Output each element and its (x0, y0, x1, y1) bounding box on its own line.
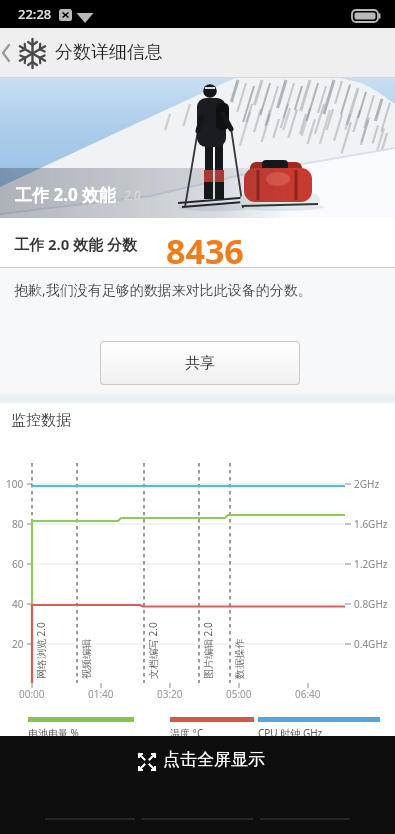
staticText: 分数详细信息 (55, 41, 163, 64)
staticText: 8436 (166, 228, 244, 274)
button[interactable]: 共享 (101, 342, 299, 384)
staticText: 工作 2.0 效能 分数 (14, 234, 138, 254)
staticText: 22:28 (18, 5, 52, 23)
staticText: 2.0 (124, 187, 141, 203)
button[interactable] (0, 28, 16, 78)
button[interactable]: 点击全屏显示 (0, 736, 395, 834)
staticText: 抱歉,我们没有足够的数据来对比此设备的分数。 (14, 280, 312, 299)
staticText: 工作 2.0 效能 (15, 183, 117, 206)
staticText: 监控数据 (11, 411, 71, 430)
staticText: 共享 (185, 354, 215, 373)
staticText: 点击全屏显示 (163, 749, 265, 770)
